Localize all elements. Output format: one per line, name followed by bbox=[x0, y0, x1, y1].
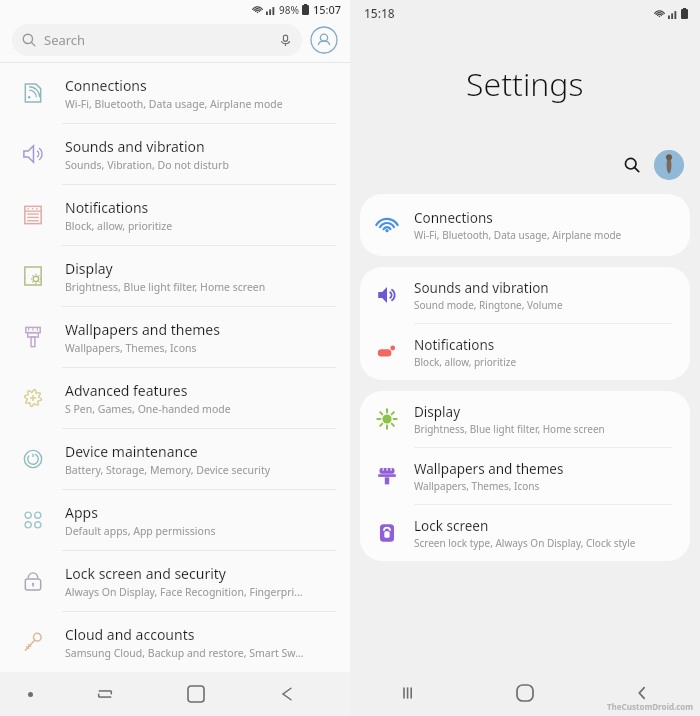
staticText: Wallpapers and themes bbox=[414, 460, 564, 478]
staticText: Block, allow, prioritize bbox=[65, 219, 173, 233]
button[interactable]: Lock screen bbox=[360, 505, 690, 561]
button[interactable]: Notifications bbox=[360, 324, 690, 380]
staticText: Lock screen and security bbox=[65, 564, 226, 583]
staticText: 98% bbox=[279, 3, 299, 17]
button[interactable]: Lock screen and security bbox=[0, 551, 350, 611]
staticText: Wallpapers, Themes, Icons bbox=[414, 479, 540, 493]
staticText: Brightness, Blue light filter, Home scre… bbox=[65, 280, 266, 294]
button[interactable]: Advanced features bbox=[0, 368, 350, 428]
staticText: Lock screen bbox=[414, 517, 489, 535]
button[interactable]: Connections bbox=[360, 194, 690, 256]
staticText: Device maintenance bbox=[65, 442, 198, 461]
button[interactable]: Recents bbox=[60, 672, 150, 716]
staticText: Connections bbox=[65, 76, 147, 95]
button[interactable]: Sounds and vibration bbox=[360, 267, 690, 323]
staticText: TheCustomDroid.com bbox=[607, 701, 694, 712]
staticText: Always On Display, Face Recognition, Fin… bbox=[65, 585, 303, 599]
button[interactable]: Home bbox=[466, 670, 583, 716]
staticText: Apps bbox=[65, 503, 98, 522]
button[interactable]: Search bbox=[617, 150, 647, 180]
staticText: Notifications bbox=[414, 336, 495, 354]
staticText: Sounds and vibration bbox=[65, 137, 205, 156]
staticText: Brightness, Blue light filter, Home scre… bbox=[414, 422, 605, 436]
button[interactable]: Home bbox=[150, 672, 241, 716]
staticText: Notifications bbox=[65, 198, 149, 217]
staticText: Samsung Cloud, Backup and restore, Smart… bbox=[65, 646, 304, 660]
staticText: Battery, Storage, Memory, Device securit… bbox=[65, 463, 271, 477]
button[interactable]: Display bbox=[360, 391, 690, 447]
staticText: Block, allow, prioritize bbox=[414, 355, 517, 369]
button[interactable]: Wallpapers and themes bbox=[360, 448, 690, 504]
staticText: 15:18 bbox=[364, 5, 395, 21]
staticText: Wallpapers, Themes, Icons bbox=[65, 341, 197, 355]
staticText: Sound mode, Ringtone, Volume bbox=[414, 298, 563, 312]
button[interactable]: Back bbox=[241, 672, 332, 716]
staticText: Screen lock type, Always On Display, Clo… bbox=[414, 536, 636, 550]
staticText: 15:07 bbox=[313, 2, 342, 17]
button[interactable]: Sounds and vibration bbox=[0, 124, 350, 184]
staticText: Sounds, Vibration, Do not disturb bbox=[65, 158, 229, 172]
staticText: Wi-Fi, Bluetooth, Data usage, Airplane m… bbox=[65, 97, 283, 111]
button[interactable]: Recents bbox=[350, 670, 466, 716]
staticText: Default apps, App permissions bbox=[65, 524, 216, 538]
staticText: Display bbox=[414, 403, 461, 421]
staticText: Advanced features bbox=[65, 381, 188, 400]
button[interactable]: Display bbox=[0, 246, 350, 306]
staticText: Wallpapers and themes bbox=[65, 320, 220, 339]
button[interactable]: Notifications bbox=[0, 185, 350, 245]
button[interactable]: Cloud and accounts bbox=[0, 612, 350, 672]
staticText: Connections bbox=[414, 209, 493, 227]
button[interactable]: Apps bbox=[0, 490, 350, 550]
button[interactable]: Connections bbox=[0, 63, 350, 123]
button[interactable]: Profile bbox=[654, 150, 684, 180]
staticText: Search bbox=[44, 31, 86, 49]
staticText: Display bbox=[65, 259, 113, 278]
staticText: Wi-Fi, Bluetooth, Data usage, Airplane m… bbox=[414, 228, 622, 242]
staticText: Settings bbox=[466, 62, 584, 106]
button[interactable]: Search bbox=[12, 24, 302, 56]
button[interactable]: Device maintenance bbox=[0, 429, 350, 489]
staticText: Cloud and accounts bbox=[65, 625, 195, 644]
staticText: S Pen, Games, One-handed mode bbox=[65, 402, 231, 416]
button[interactable]: Account bbox=[310, 26, 338, 54]
button[interactable]: Back bbox=[583, 670, 700, 716]
button[interactable]: Wallpapers and themes bbox=[0, 307, 350, 367]
staticText: Sounds and vibration bbox=[414, 279, 549, 297]
